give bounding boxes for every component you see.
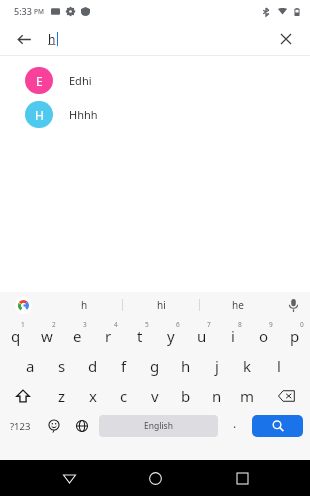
staticText: b [181, 386, 191, 406]
staticText: a [26, 356, 35, 376]
staticText: hi [157, 298, 166, 312]
staticText: l [277, 356, 281, 376]
button[interactable]: s [46, 351, 77, 380]
button[interactable]: q [0, 321, 31, 350]
staticText: v [151, 386, 159, 406]
staticText: 0 [300, 320, 304, 329]
staticText: H [35, 107, 44, 123]
button[interactable]: t [124, 321, 155, 350]
button[interactable]: c [108, 381, 139, 410]
button[interactable]: f [108, 351, 139, 380]
staticText: Edhi [69, 73, 92, 88]
staticText: g [150, 356, 160, 376]
button[interactable]: Voice input [276, 292, 310, 318]
button[interactable]: Recents [224, 460, 260, 496]
staticText: y [167, 326, 175, 346]
staticText: r [105, 326, 112, 346]
staticText: w [41, 326, 53, 346]
button[interactable]: o [248, 321, 279, 350]
staticText: d [88, 356, 98, 376]
button[interactable]: a [15, 351, 46, 380]
button[interactable]: l [263, 351, 294, 380]
staticText: 8 [238, 320, 242, 329]
staticText: s [58, 356, 66, 376]
staticText: p [290, 326, 300, 346]
button[interactable]: u [186, 321, 217, 350]
button[interactable]: i [217, 321, 248, 350]
button[interactable]: h [170, 351, 201, 380]
staticText: PM [34, 7, 44, 16]
button[interactable]: n [201, 381, 232, 410]
button[interactable]: E [0, 63, 310, 97]
staticText: 4 [114, 320, 118, 329]
button[interactable]: Shift [0, 381, 46, 410]
button[interactable]: w [31, 321, 62, 350]
button[interactable]: p [279, 321, 310, 350]
button[interactable]: . [221, 412, 249, 440]
staticText: q [11, 326, 21, 346]
staticText: t [137, 326, 143, 346]
staticText: c [120, 386, 128, 406]
staticText: 5:33 [14, 5, 32, 17]
button[interactable]: Clear search [272, 25, 300, 53]
button[interactable]: h [46, 292, 122, 318]
staticText: 7 [207, 320, 211, 329]
staticText: 2 [52, 320, 56, 329]
staticText: i [231, 326, 235, 346]
staticText: 9 [269, 320, 273, 329]
button[interactable]: e [62, 321, 93, 350]
button[interactable]: Google [0, 292, 46, 318]
button[interactable]: d [77, 351, 108, 380]
button[interactable]: hi [123, 292, 199, 318]
staticText: h [48, 31, 56, 47]
staticText: E [36, 73, 43, 89]
button[interactable]: H [0, 97, 310, 131]
staticText: 1 [21, 320, 25, 329]
staticText: f [121, 356, 127, 376]
button[interactable]: English [99, 415, 218, 437]
button[interactable]: z [46, 381, 77, 410]
button[interactable]: y [155, 321, 186, 350]
staticText: English [144, 420, 173, 432]
button[interactable]: Home [137, 460, 173, 496]
button[interactable]: v [139, 381, 170, 410]
staticText: he [232, 298, 244, 312]
staticText: h [81, 298, 88, 312]
staticText: h [181, 356, 191, 376]
staticText: . [233, 415, 237, 431]
staticText: k [243, 356, 252, 376]
staticText: x [89, 386, 97, 406]
button[interactable]: k [232, 351, 263, 380]
staticText: ?123 [10, 420, 31, 433]
staticText: m [240, 386, 255, 406]
button[interactable]: Change language [68, 412, 96, 440]
button[interactable]: x [77, 381, 108, 410]
staticText: Hhhh [69, 107, 98, 122]
button[interactable]: Search [252, 415, 303, 437]
button[interactable]: Back [10, 25, 38, 53]
button[interactable]: he [200, 292, 276, 318]
button[interactable]: g [139, 351, 170, 380]
button[interactable]: b [170, 381, 201, 410]
button[interactable]: j [201, 351, 232, 380]
staticText: u [197, 326, 207, 346]
button[interactable]: m [232, 381, 263, 410]
staticText: 3 [83, 320, 87, 329]
button[interactable]: ?123 [0, 412, 40, 440]
button[interactable]: r [93, 321, 124, 350]
button[interactable]: Backspace [263, 381, 310, 410]
staticText: o [259, 326, 269, 346]
staticText: z [58, 386, 66, 406]
staticText: e [73, 326, 82, 346]
button[interactable]: Back [51, 460, 87, 496]
staticText: j [215, 356, 219, 376]
staticText: n [212, 386, 222, 406]
button[interactable]: Emoji [40, 412, 68, 440]
staticText: 6 [176, 320, 180, 329]
staticText: 5 [145, 320, 149, 329]
